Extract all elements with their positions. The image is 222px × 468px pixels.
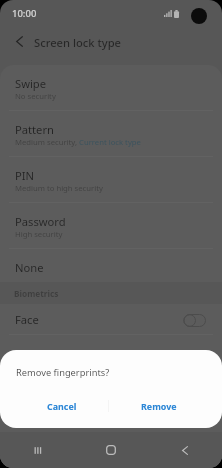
button[interactable]: Fingerprints — [0, 335, 222, 380]
staticText: Face — [15, 312, 39, 327]
staticText: High security — [15, 229, 63, 239]
staticText: Cancel — [47, 400, 77, 412]
staticText: Medium security, Current lock type — [15, 137, 141, 147]
button[interactable]: Swipe — [0, 65, 222, 110]
staticText: Password — [15, 214, 66, 229]
staticText: Biometrics — [14, 288, 59, 299]
button[interactable]: Home — [74, 432, 148, 468]
button[interactable]: Remove — [109, 392, 208, 420]
button[interactable]: Back — [148, 432, 222, 468]
staticText: Screen lock type — [34, 35, 121, 50]
staticText: Pattern — [15, 122, 54, 137]
staticText: Up to 4 fingerprints — [15, 361, 86, 371]
button[interactable]: None — [0, 249, 222, 282]
staticText: Remove fingerprints? — [16, 366, 110, 379]
button[interactable]: Navigate up — [5, 27, 34, 56]
button[interactable]: Cancel — [16, 392, 108, 420]
staticText: Remove — [141, 400, 177, 412]
staticText: 10:00 — [12, 7, 37, 20]
button[interactable]: Face — [0, 304, 222, 334]
button[interactable]: Recent apps — [0, 432, 74, 468]
staticText: No security — [15, 91, 56, 101]
button[interactable]: PIN — [0, 157, 222, 202]
button[interactable]: Pattern — [0, 111, 222, 156]
button[interactable]: Password — [0, 203, 222, 248]
staticText: Fingerprints — [15, 346, 80, 361]
staticText: PIN — [15, 168, 35, 183]
staticText: None — [15, 260, 44, 275]
staticText: Medium to high security — [15, 183, 103, 193]
staticText: Swipe — [15, 76, 47, 91]
